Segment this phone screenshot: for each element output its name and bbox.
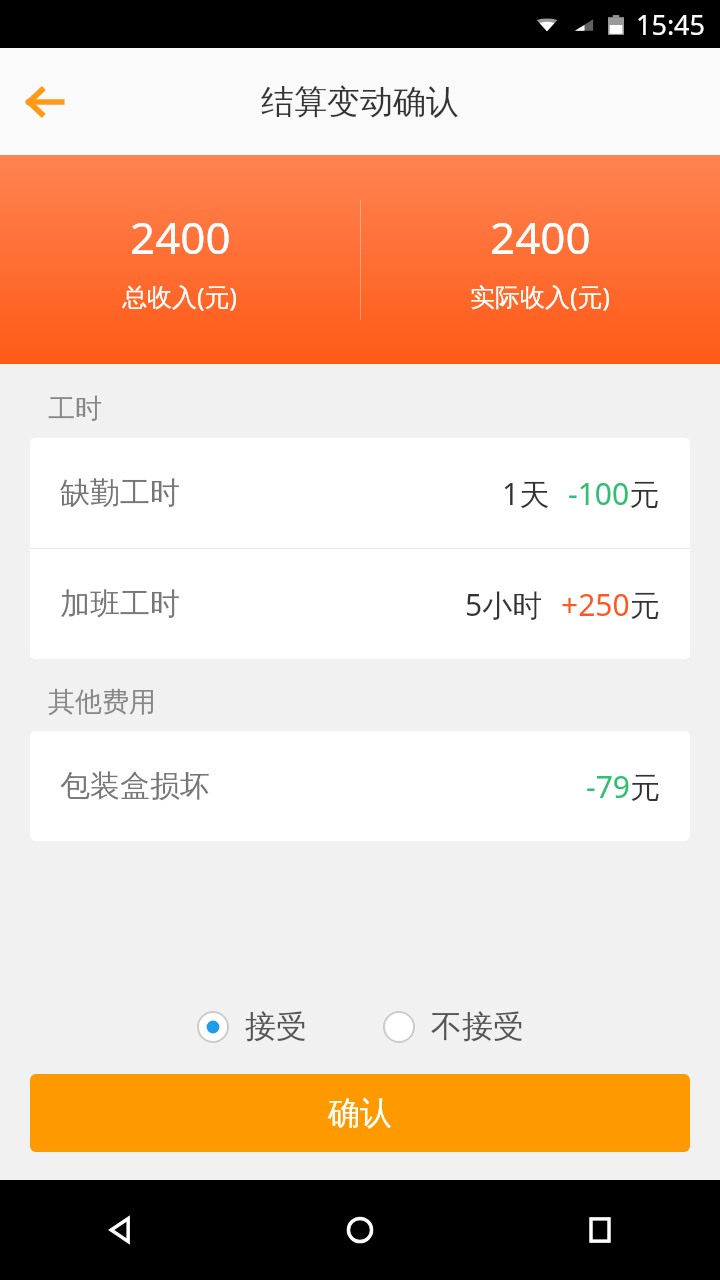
button[interactable]: 包装盒损坏	[30, 731, 690, 841]
button[interactable]: 确认	[30, 1074, 690, 1152]
staticText: +250元	[561, 584, 660, 625]
button[interactable]: 缺勤工时	[30, 438, 690, 548]
staticText: 包装盒损坏	[60, 767, 210, 805]
staticText: 确认	[328, 1093, 392, 1133]
staticText: -79元	[586, 766, 660, 807]
button[interactable]: 接受	[193, 1001, 311, 1052]
button[interactable]: Back	[0, 1180, 240, 1280]
staticText: 15:45	[636, 6, 706, 43]
staticText: 其他费用	[48, 685, 156, 719]
button[interactable]: 加班工时	[30, 549, 690, 659]
staticText: 结算变动确认	[261, 81, 459, 123]
staticText: 总收入(元)	[122, 279, 238, 313]
staticText: 加班工时	[60, 585, 180, 623]
button[interactable]: Home	[240, 1180, 480, 1280]
staticText: 实际收入(元)	[470, 279, 611, 313]
staticText: 接受	[245, 1007, 307, 1046]
staticText: 2400	[490, 207, 591, 267]
staticText: -100元	[568, 473, 660, 514]
staticText: 1天	[502, 473, 550, 514]
staticText: 不接受	[431, 1007, 524, 1046]
button[interactable]: Recent apps	[480, 1180, 720, 1280]
staticText: 5小时	[465, 584, 543, 625]
staticText: 2400	[130, 207, 231, 267]
button[interactable]: 不接受	[379, 1001, 528, 1052]
staticText: 缺勤工时	[60, 474, 180, 512]
button[interactable]: Back	[10, 67, 80, 137]
staticText: 工时	[48, 392, 102, 426]
